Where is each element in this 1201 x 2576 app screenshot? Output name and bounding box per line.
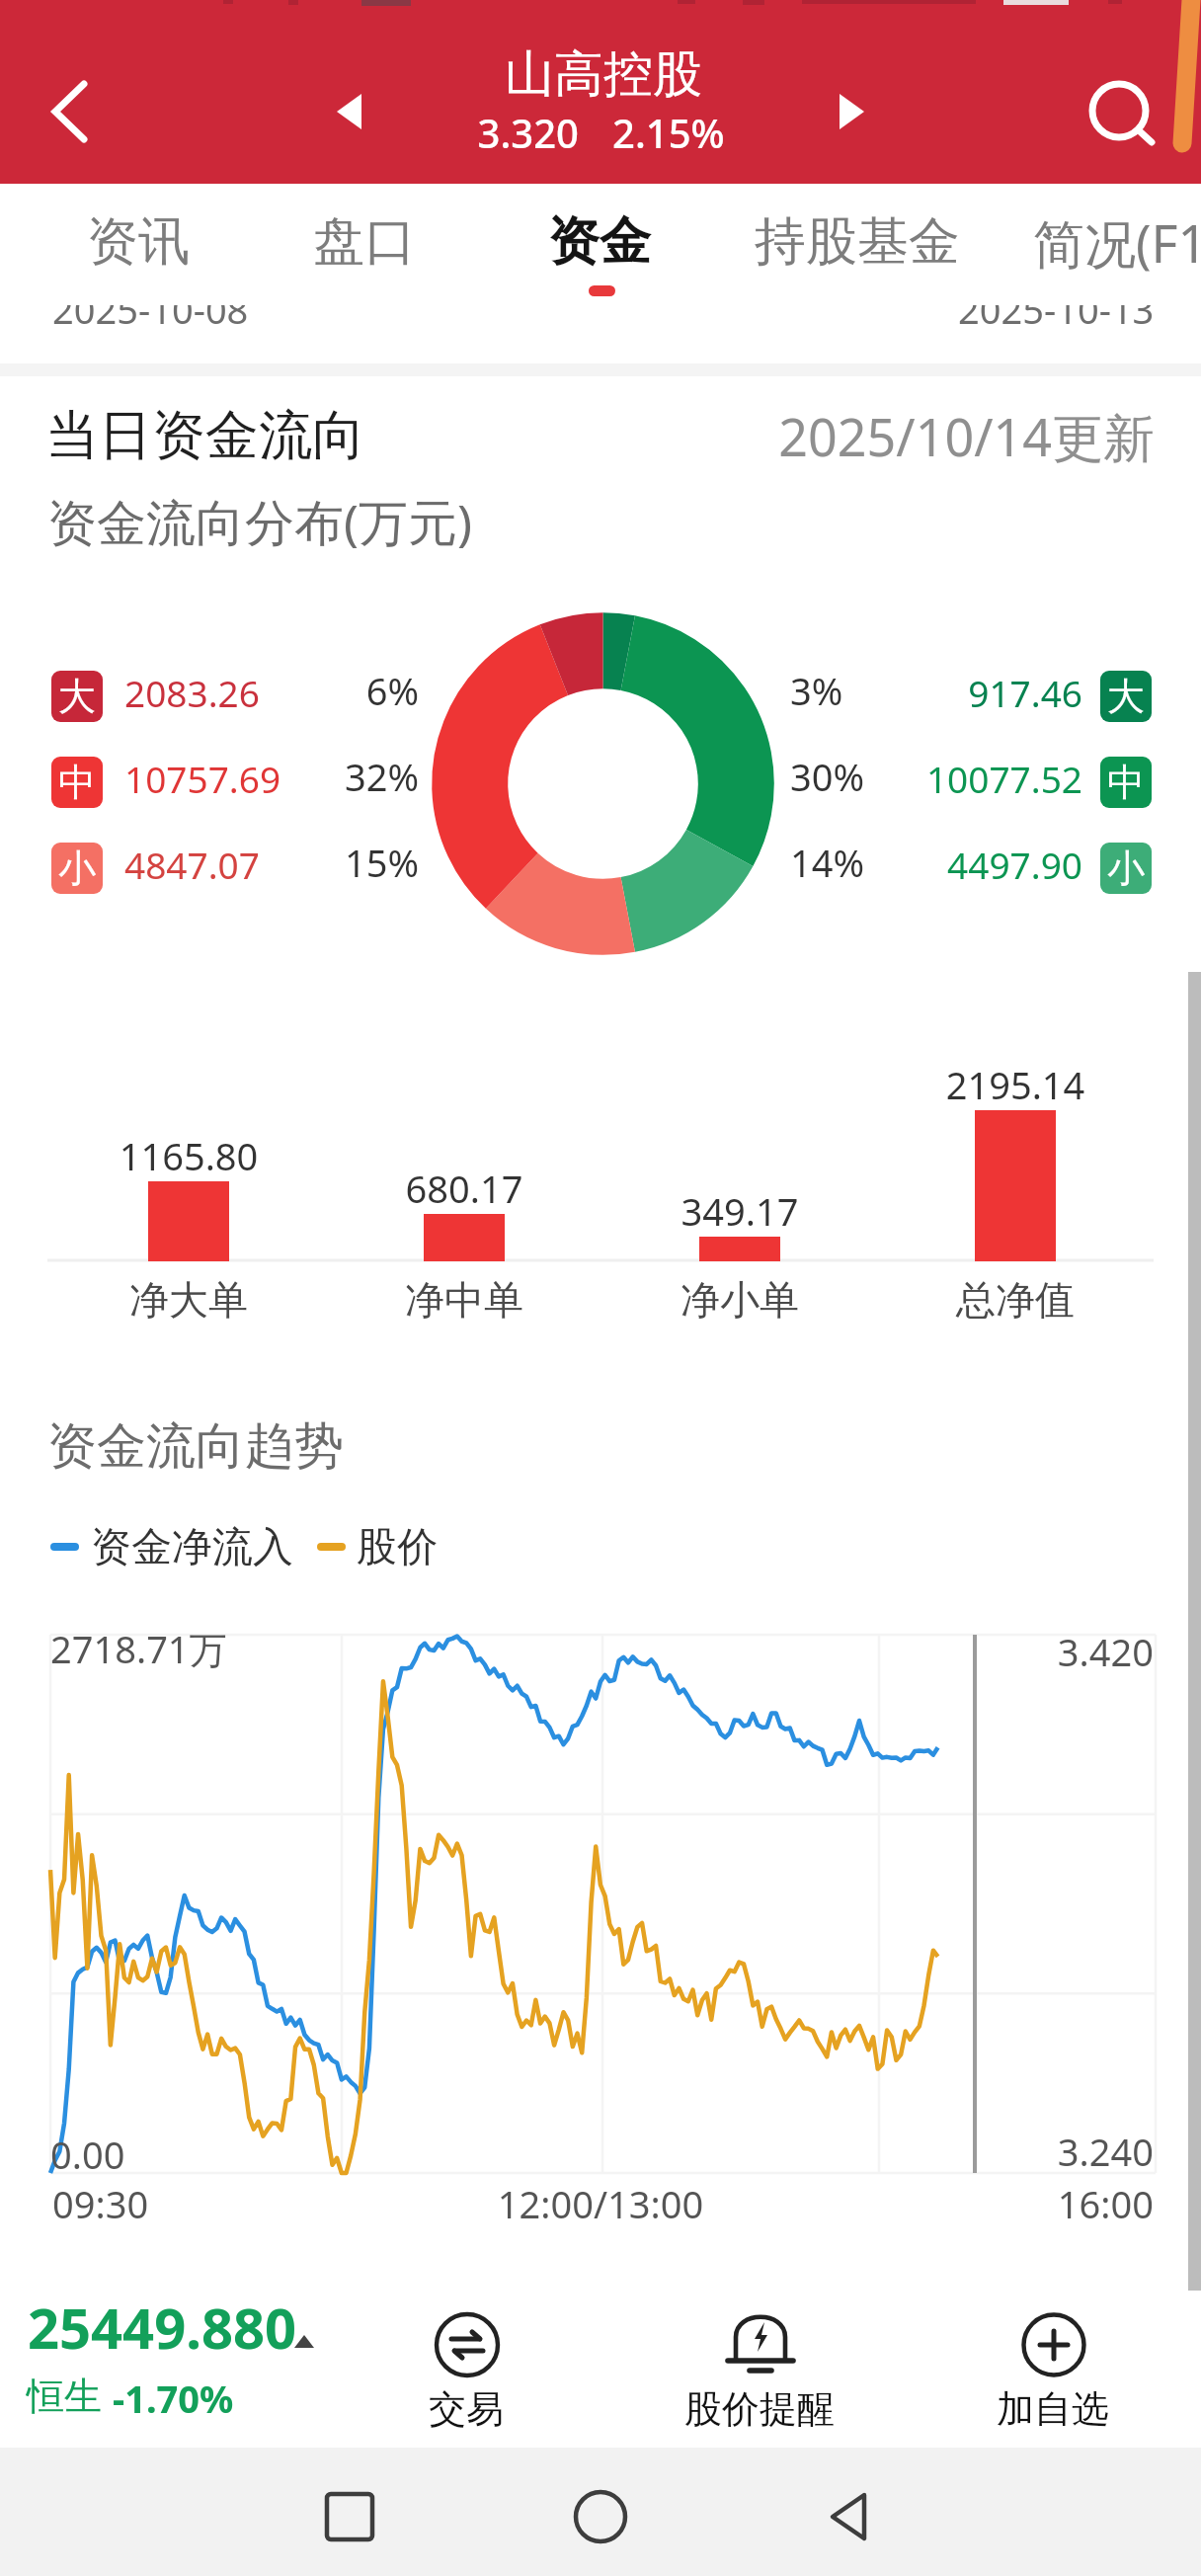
button[interactable]: 简况(F1 (992, 188, 1201, 296)
staticText: 3.320 (380, 106, 579, 159)
staticText: 2195.14 (867, 1059, 1163, 1110)
staticText: 4497.90 (786, 840, 1082, 889)
staticText: 10757.69 (124, 754, 281, 803)
button[interactable]: Back (6, 52, 124, 171)
staticText: 简况(F1 (1033, 207, 1201, 278)
button[interactable]: Next stock (815, 62, 914, 161)
staticText: 917.46 (786, 668, 1082, 717)
staticText: 12:00/13:00 (395, 2178, 806, 2229)
staticText: 15% (261, 837, 419, 888)
staticText: 净大单 (40, 1275, 337, 1325)
button[interactable]: Home (541, 2457, 660, 2576)
button[interactable]: Trade (358, 2288, 575, 2436)
staticText: 349.17 (592, 1185, 888, 1237)
staticText: 资讯 (87, 209, 190, 275)
staticText: 资金 (548, 209, 651, 275)
staticText: 小 (58, 845, 96, 892)
staticText: 680.17 (316, 1163, 612, 1214)
button[interactable]: Recents (290, 2457, 409, 2576)
button[interactable]: 净中单 (316, 1269, 612, 1348)
staticText: 2025-10-08 (52, 283, 249, 335)
button[interactable]: 净小单 (592, 1269, 888, 1348)
staticText: 3.420 (857, 1626, 1154, 1677)
staticText: 股价提醒 (651, 2385, 868, 2433)
button[interactable]: 总净值 (867, 1269, 1163, 1348)
staticText: 32% (261, 751, 419, 802)
staticText: 中 (58, 759, 96, 806)
staticText: 14% (790, 837, 865, 888)
button[interactable]: Back (790, 2457, 909, 2576)
staticText: 6% (261, 665, 419, 716)
staticText: 股价 (357, 1522, 438, 1573)
staticText: 盘口 (313, 209, 416, 275)
staticText: 当日资金流向 (45, 402, 365, 469)
staticText: 25449.880 (28, 2290, 296, 2365)
button[interactable]: Add to watchlist (944, 2288, 1161, 2436)
button[interactable]: 25449.880 (20, 2288, 336, 2426)
staticText: 2025-10-13 (958, 283, 1155, 335)
staticText: 净小单 (592, 1275, 888, 1325)
staticText: 3.240 (857, 2126, 1154, 2177)
staticText: 2083.26 (124, 668, 260, 717)
staticText: 资金流向趋势 (47, 1415, 344, 1478)
staticText: 加自选 (944, 2385, 1161, 2433)
staticText: 4847.07 (124, 840, 260, 889)
staticText: 中 (1107, 759, 1145, 806)
staticText: 恒生 (27, 2373, 102, 2420)
staticText: 总净值 (867, 1275, 1163, 1325)
staticText: 大 (1107, 673, 1145, 720)
staticText: 3% (790, 665, 843, 716)
staticText: 持股基金 (755, 209, 960, 275)
staticText: 30% (790, 751, 865, 802)
staticText: 交易 (358, 2385, 575, 2433)
staticText: 16:00 (857, 2178, 1154, 2229)
staticText: 资金净流入 (91, 1522, 293, 1573)
staticText: 小 (1107, 845, 1145, 892)
staticText: 大 (58, 673, 96, 720)
staticText: 1165.80 (40, 1130, 337, 1181)
staticText: -1.70% (113, 2373, 234, 2424)
button[interactable]: Price alert (651, 2288, 868, 2436)
button[interactable]: Previous stock (287, 62, 386, 161)
staticText: 2.15% (612, 106, 810, 159)
button[interactable]: Search (1060, 51, 1178, 170)
button[interactable]: 资金 (471, 188, 728, 296)
staticText: 10077.52 (786, 754, 1082, 803)
button[interactable]: 盘口 (236, 188, 493, 296)
staticText: 山高控股 (357, 43, 850, 106)
staticText: 净中单 (316, 1275, 612, 1325)
staticText: 资金流向分布(万元) (47, 488, 472, 555)
button[interactable]: 资讯 (10, 188, 267, 296)
button[interactable]: 净大单 (40, 1269, 337, 1348)
staticText: 09:30 (52, 2178, 149, 2229)
staticText: 2718.71万 (50, 1623, 227, 1674)
button[interactable]: 持股基金 (729, 188, 986, 296)
staticText: 2025/10/14更新 (691, 401, 1155, 471)
staticText: 0.00 (50, 2129, 125, 2180)
